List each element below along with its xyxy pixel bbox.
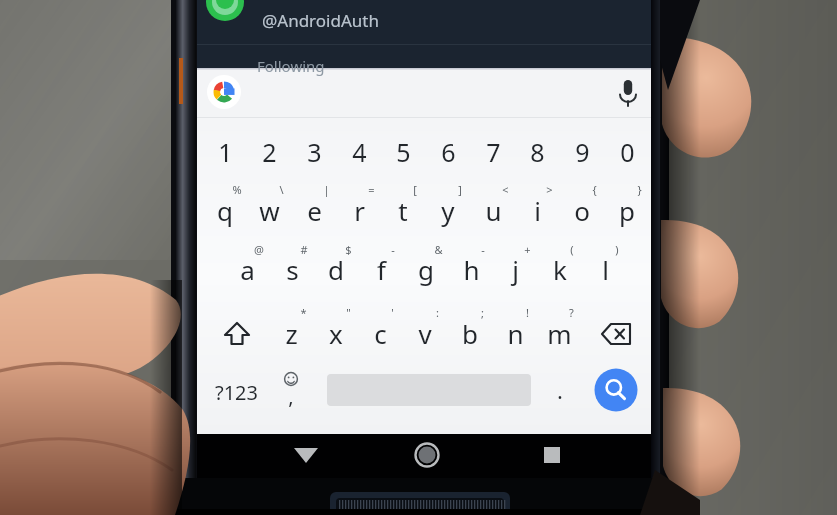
- button[interactable]: Period: [545, 366, 587, 412]
- staticText: 2: [262, 135, 277, 169]
- staticText: 3: [307, 135, 322, 169]
- staticText: v: [418, 316, 432, 351]
- staticText: x: [329, 316, 343, 351]
- staticText: $: [345, 242, 352, 257]
- staticText: p: [619, 193, 635, 228]
- staticText: ;: [481, 305, 484, 320]
- staticText: }: [637, 182, 642, 197]
- staticText: ?123: [215, 379, 258, 406]
- staticText: \: [279, 182, 284, 197]
- staticText: ]: [458, 182, 462, 197]
- staticText: +: [524, 242, 531, 257]
- staticText: .: [557, 375, 563, 405]
- button[interactable]: Home: [398, 436, 454, 476]
- button[interactable]: Symbols ?123: [205, 366, 265, 412]
- staticText: c: [374, 316, 387, 351]
- button[interactable]: Backspace: [592, 312, 642, 360]
- button[interactable]: Google search: [205, 72, 245, 112]
- staticText: @: [254, 242, 264, 257]
- staticText: q: [217, 193, 233, 228]
- staticText: i: [534, 193, 541, 228]
- staticText: <: [502, 182, 509, 197]
- staticText: o: [574, 193, 590, 228]
- staticText: t: [398, 193, 408, 228]
- staticText: |: [323, 182, 330, 197]
- button[interactable]: Voice input: [608, 72, 648, 112]
- staticText: y: [441, 193, 455, 228]
- staticText: l: [602, 252, 609, 287]
- staticText: 6: [441, 135, 456, 169]
- staticText: 9: [575, 135, 590, 169]
- staticText: s: [286, 252, 299, 287]
- staticText: #: [300, 242, 308, 257]
- staticText: ": [346, 305, 351, 320]
- staticText: r: [354, 193, 365, 228]
- staticText: !: [526, 305, 529, 320]
- staticText: g: [418, 252, 434, 287]
- staticText: u: [485, 193, 502, 228]
- staticText: k: [553, 252, 567, 287]
- staticText: m: [547, 316, 572, 351]
- staticText: -: [481, 242, 485, 257]
- staticText: n: [507, 316, 524, 351]
- staticText: b: [462, 316, 478, 351]
- staticText: &: [434, 242, 443, 257]
- staticText: =: [368, 182, 375, 197]
- staticText: >: [546, 182, 553, 197]
- staticText: 0: [620, 135, 635, 169]
- staticText: Following: [257, 56, 325, 76]
- staticText: 1: [218, 135, 233, 169]
- button[interactable]: Recents: [522, 436, 578, 476]
- staticText: ?: [569, 305, 574, 320]
- staticText: 7: [486, 135, 501, 169]
- button[interactable]: Shift: [215, 312, 261, 360]
- button[interactable]: Hide keyboard: [276, 436, 336, 476]
- staticText: d: [328, 252, 344, 287]
- staticText: ): [615, 242, 619, 257]
- staticText: @AndroidAuth: [262, 9, 379, 32]
- staticText: e: [307, 193, 322, 228]
- staticText: j: [512, 252, 519, 287]
- staticText: -: [391, 242, 395, 257]
- staticText: [: [413, 182, 417, 197]
- button[interactable]: Emoji and comma: [270, 366, 316, 412]
- staticText: {: [592, 182, 597, 197]
- staticText: 4: [352, 135, 367, 169]
- staticText: *: [300, 305, 307, 320]
- staticText: a: [240, 252, 255, 287]
- staticText: ,: [288, 383, 294, 410]
- button[interactable]: Search: [594, 368, 638, 412]
- staticText: ': [391, 305, 394, 320]
- button[interactable]: Space: [322, 368, 538, 410]
- staticText: 8: [530, 135, 545, 169]
- staticText: h: [463, 252, 480, 287]
- staticText: %: [232, 182, 242, 197]
- staticText: :: [436, 305, 439, 320]
- staticText: w: [259, 193, 280, 228]
- staticText: (: [570, 242, 574, 257]
- staticText: 5: [396, 135, 411, 169]
- staticText: f: [377, 252, 386, 287]
- staticText: z: [285, 316, 298, 351]
